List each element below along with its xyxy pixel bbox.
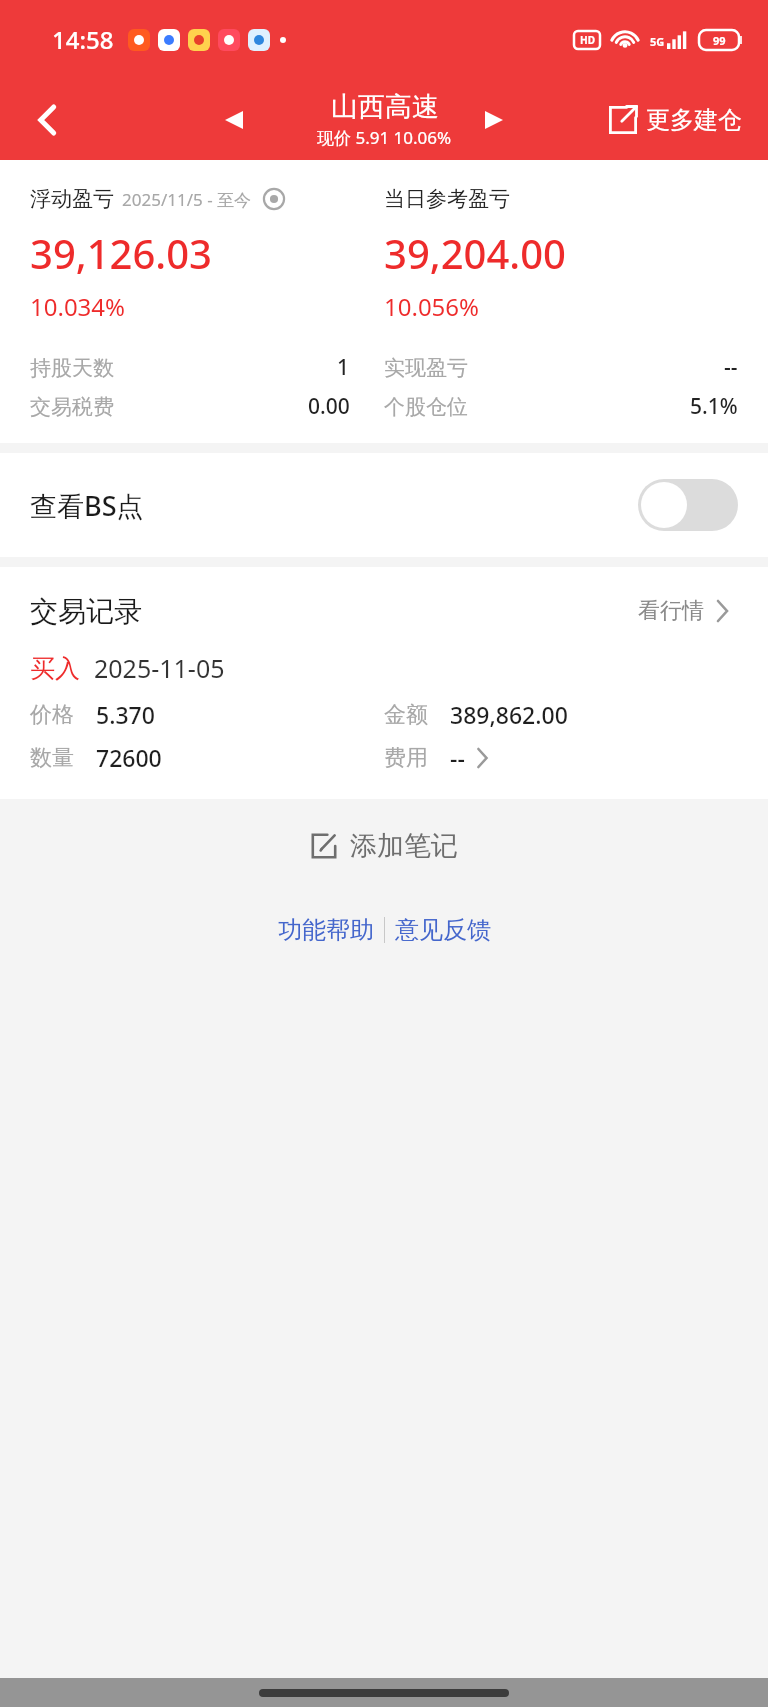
- staticText: 添加笔记: [350, 829, 458, 863]
- staticText: 更多建仓: [646, 105, 742, 135]
- staticText: 买入: [30, 653, 80, 684]
- staticText: 现价 5.91 10.06%: [317, 126, 452, 149]
- staticText: 金额: [384, 701, 428, 729]
- staticText: 交易税费: [30, 394, 114, 420]
- staticText: 当日参考盈亏: [384, 186, 510, 212]
- staticText: 数量: [30, 744, 74, 772]
- button[interactable]: 更多建仓: [600, 97, 750, 143]
- staticText: 10.056%: [384, 290, 480, 323]
- staticText: 72600: [96, 742, 162, 773]
- staticText: 10.034%: [30, 290, 126, 323]
- staticText: 39,126.03: [30, 226, 212, 280]
- staticText: 山西高速: [331, 90, 439, 124]
- button[interactable]: 功能帮助: [268, 909, 384, 951]
- staticText: 功能帮助: [278, 915, 374, 945]
- staticText: 99: [713, 33, 726, 48]
- staticText: 意见反馈: [395, 915, 491, 945]
- staticText: 2025/11/5 - 至今: [122, 188, 252, 211]
- button[interactable]: 查看BS点: [0, 453, 768, 557]
- staticText: 浮动盈亏: [30, 186, 114, 212]
- button[interactable]: 添加笔记: [0, 821, 768, 871]
- staticText: 5.1%: [690, 392, 738, 421]
- staticText: 费用: [384, 744, 428, 772]
- staticText: 389,862.00: [450, 699, 568, 730]
- staticText: 14:58: [52, 23, 114, 56]
- staticText: 39,204.00: [384, 226, 566, 280]
- button[interactable]: 意见反馈: [385, 909, 501, 951]
- staticText: 看行情: [638, 597, 704, 625]
- staticText: 5G: [650, 34, 665, 49]
- button[interactable]: Previous: [208, 94, 260, 146]
- staticText: 价格: [30, 701, 74, 729]
- staticText: 实现盈亏: [384, 355, 468, 381]
- staticText: 0.00: [308, 392, 350, 421]
- button[interactable]: 看行情: [632, 591, 738, 631]
- staticText: 1: [337, 353, 350, 382]
- staticText: 5.370: [96, 699, 155, 730]
- staticText: HD: [580, 33, 595, 47]
- button[interactable]: Toggle visibility: [262, 187, 286, 211]
- staticText: --: [450, 742, 465, 773]
- staticText: 2025-11-05: [94, 651, 225, 685]
- button[interactable]: Next: [468, 94, 520, 146]
- staticText: 交易记录: [30, 594, 142, 629]
- staticText: 查看BS点: [30, 487, 144, 524]
- button[interactable]: Back: [20, 92, 76, 148]
- staticText: 个股仓位: [384, 394, 468, 420]
- staticText: 持股天数: [30, 355, 114, 381]
- staticText: --: [724, 353, 738, 382]
